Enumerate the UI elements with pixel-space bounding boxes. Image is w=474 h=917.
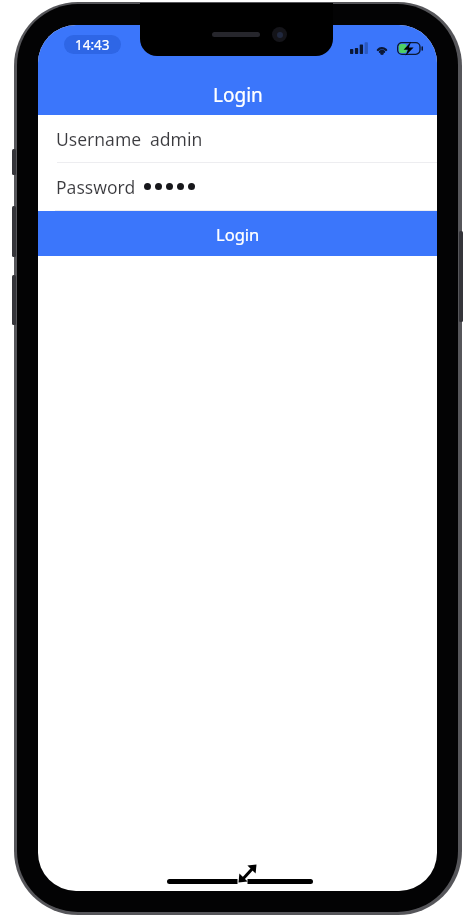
staticText: Login (216, 223, 260, 245)
button[interactable]: Login (38, 211, 437, 256)
staticText: Login (213, 82, 263, 108)
staticText: Username (56, 127, 142, 151)
button[interactable]: Password (38, 163, 437, 210)
staticText: Password (56, 175, 136, 199)
button[interactable]: Username (38, 115, 437, 162)
other: Resize (237, 863, 257, 884)
staticText: 14:43 (75, 36, 110, 54)
staticText: admin (150, 127, 203, 151)
